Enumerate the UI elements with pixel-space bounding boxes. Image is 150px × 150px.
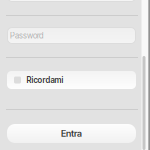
staticText: Ricordami xyxy=(26,75,63,85)
button[interactable]: Ricordami xyxy=(7,71,136,89)
staticText: Entra xyxy=(61,128,82,139)
button[interactable]: Entra xyxy=(7,124,136,143)
button[interactable]: Password xyxy=(7,27,136,44)
staticText: Password xyxy=(10,31,43,40)
